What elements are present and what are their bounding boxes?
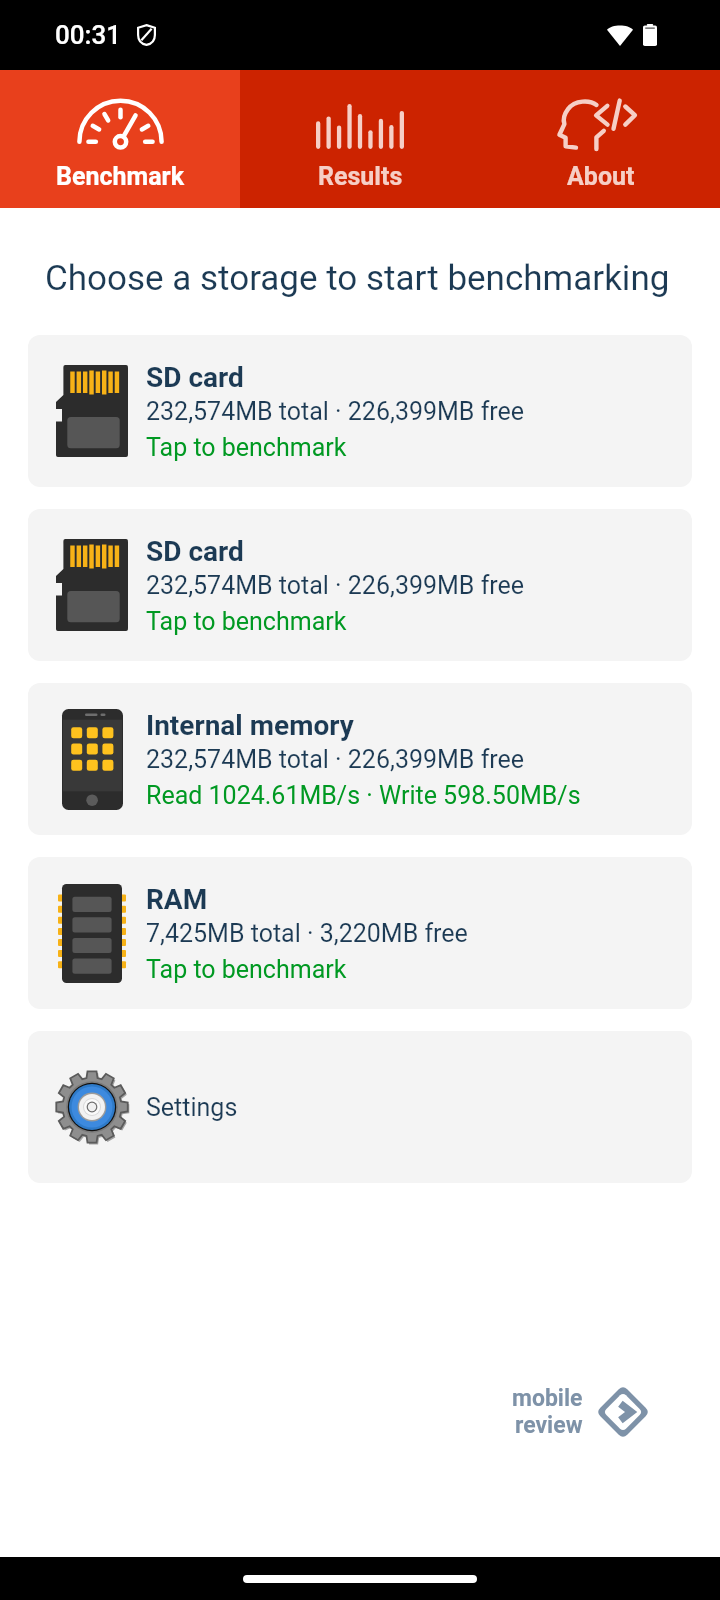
staticText: 232,574MB total · 226,399MB free	[146, 397, 525, 426]
staticText: Tap to benchmark	[146, 607, 347, 636]
staticText: Benchmark	[56, 162, 185, 191]
staticText: Tap to benchmark	[146, 955, 347, 984]
staticText: Internal memory	[146, 709, 354, 742]
staticText: 00:31	[55, 20, 122, 50]
staticText: review	[515, 1412, 583, 1439]
button[interactable]: Benchmark	[0, 70, 240, 208]
staticText: 232,574MB total · 226,399MB free	[146, 745, 525, 774]
staticText: mobile	[512, 1385, 583, 1412]
staticText: Settings	[146, 1093, 238, 1122]
button[interactable]: About	[480, 70, 720, 208]
staticText: About	[567, 162, 635, 191]
button[interactable]: Results	[240, 70, 480, 208]
button[interactable]: RAM	[28, 857, 692, 1009]
staticText: Results	[318, 162, 403, 191]
button[interactable]: SD card	[28, 509, 692, 661]
button[interactable]: Internal memory	[28, 683, 692, 835]
button[interactable]: Settings	[28, 1031, 692, 1183]
staticText: 232,574MB total · 226,399MB free	[146, 571, 525, 600]
button[interactable]: SD card	[28, 335, 692, 487]
staticText: RAM	[146, 883, 208, 916]
staticText: Choose a storage to start benchmarking	[45, 258, 670, 299]
staticText: Tap to benchmark	[146, 433, 347, 462]
staticText: SD card	[146, 361, 244, 394]
staticText: Read 1024.61MB/s · Write 598.50MB/s	[146, 781, 581, 810]
staticText: SD card	[146, 535, 244, 568]
staticText: 7,425MB total · 3,220MB free	[146, 919, 468, 948]
